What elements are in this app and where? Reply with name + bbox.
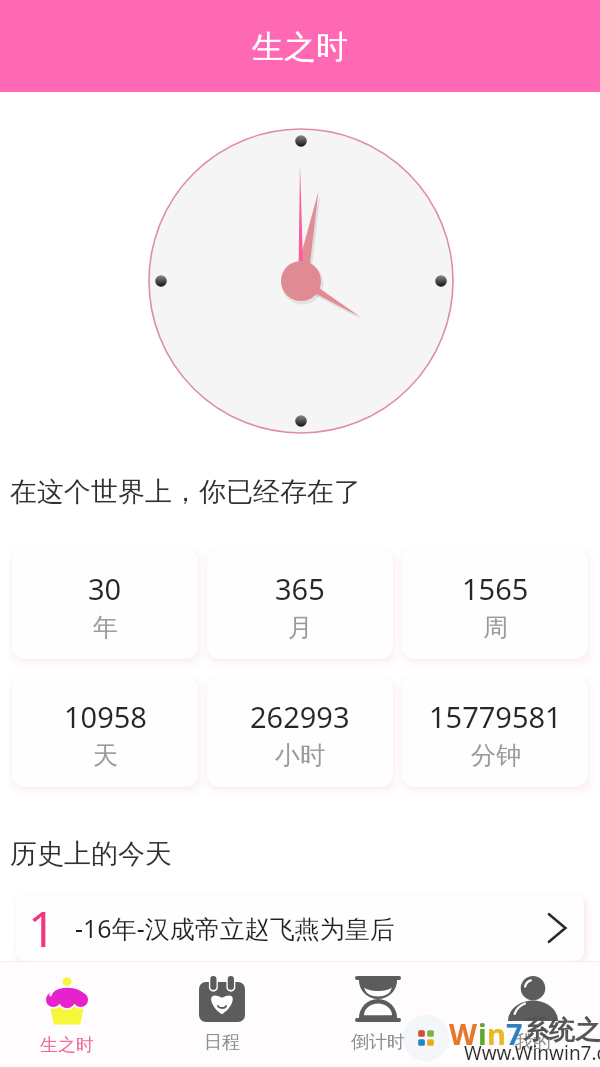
staticText: 年 [93,612,118,643]
button[interactable]: 30 [12,548,198,659]
button[interactable]: 1 [16,895,584,961]
staticText: 1565 [462,569,529,608]
staticText: n [487,1014,506,1053]
button[interactable]: 日程 [167,962,277,1067]
staticText: 在这个世界上，你已经存在了 [10,475,361,509]
button[interactable]: 生之时 [12,962,122,1067]
staticText: 周 [483,612,508,643]
staticText: 小时 [275,740,325,771]
button[interactable]: 15779581 [402,676,588,787]
other: 生之时 [46,976,88,1025]
staticText: 15779581 [429,697,562,736]
button[interactable]: 365 [207,548,393,659]
staticText: 分钟 [471,740,521,771]
staticText: 10958 [64,697,147,736]
button[interactable]: 1565 [402,548,588,659]
staticText: 历史上的今天 [10,837,172,871]
staticText: 30 [88,569,122,608]
staticText: 1 [28,895,57,961]
staticText: 生之时 [252,27,348,67]
other: 倒计时 [355,976,401,1022]
staticText: -16年-汉成帝立赵飞燕为皇后 [75,911,395,945]
staticText: 天 [93,740,118,771]
staticText: 生之时 [40,1034,94,1057]
staticText: 倒计时 [351,1031,405,1054]
button[interactable]: 262993 [207,676,393,787]
staticText: W [449,1014,478,1053]
staticText: 日程 [204,1031,240,1054]
other: 我的 [508,976,558,1022]
staticText: Www.Winwin7.com [464,1040,600,1066]
staticText: 262993 [250,697,350,736]
button[interactable]: 倒计时 [323,962,433,1067]
staticText: 月 [288,612,313,643]
staticText: 365 [275,569,325,608]
button[interactable]: 我的 [478,962,588,1067]
staticText: 我的 [515,1031,551,1054]
staticText: i [478,1014,487,1053]
staticText: 7 [506,1014,523,1053]
staticText: 系统之家 [523,1014,600,1047]
other: 日程 [199,976,245,1022]
button[interactable]: 10958 [12,676,198,787]
